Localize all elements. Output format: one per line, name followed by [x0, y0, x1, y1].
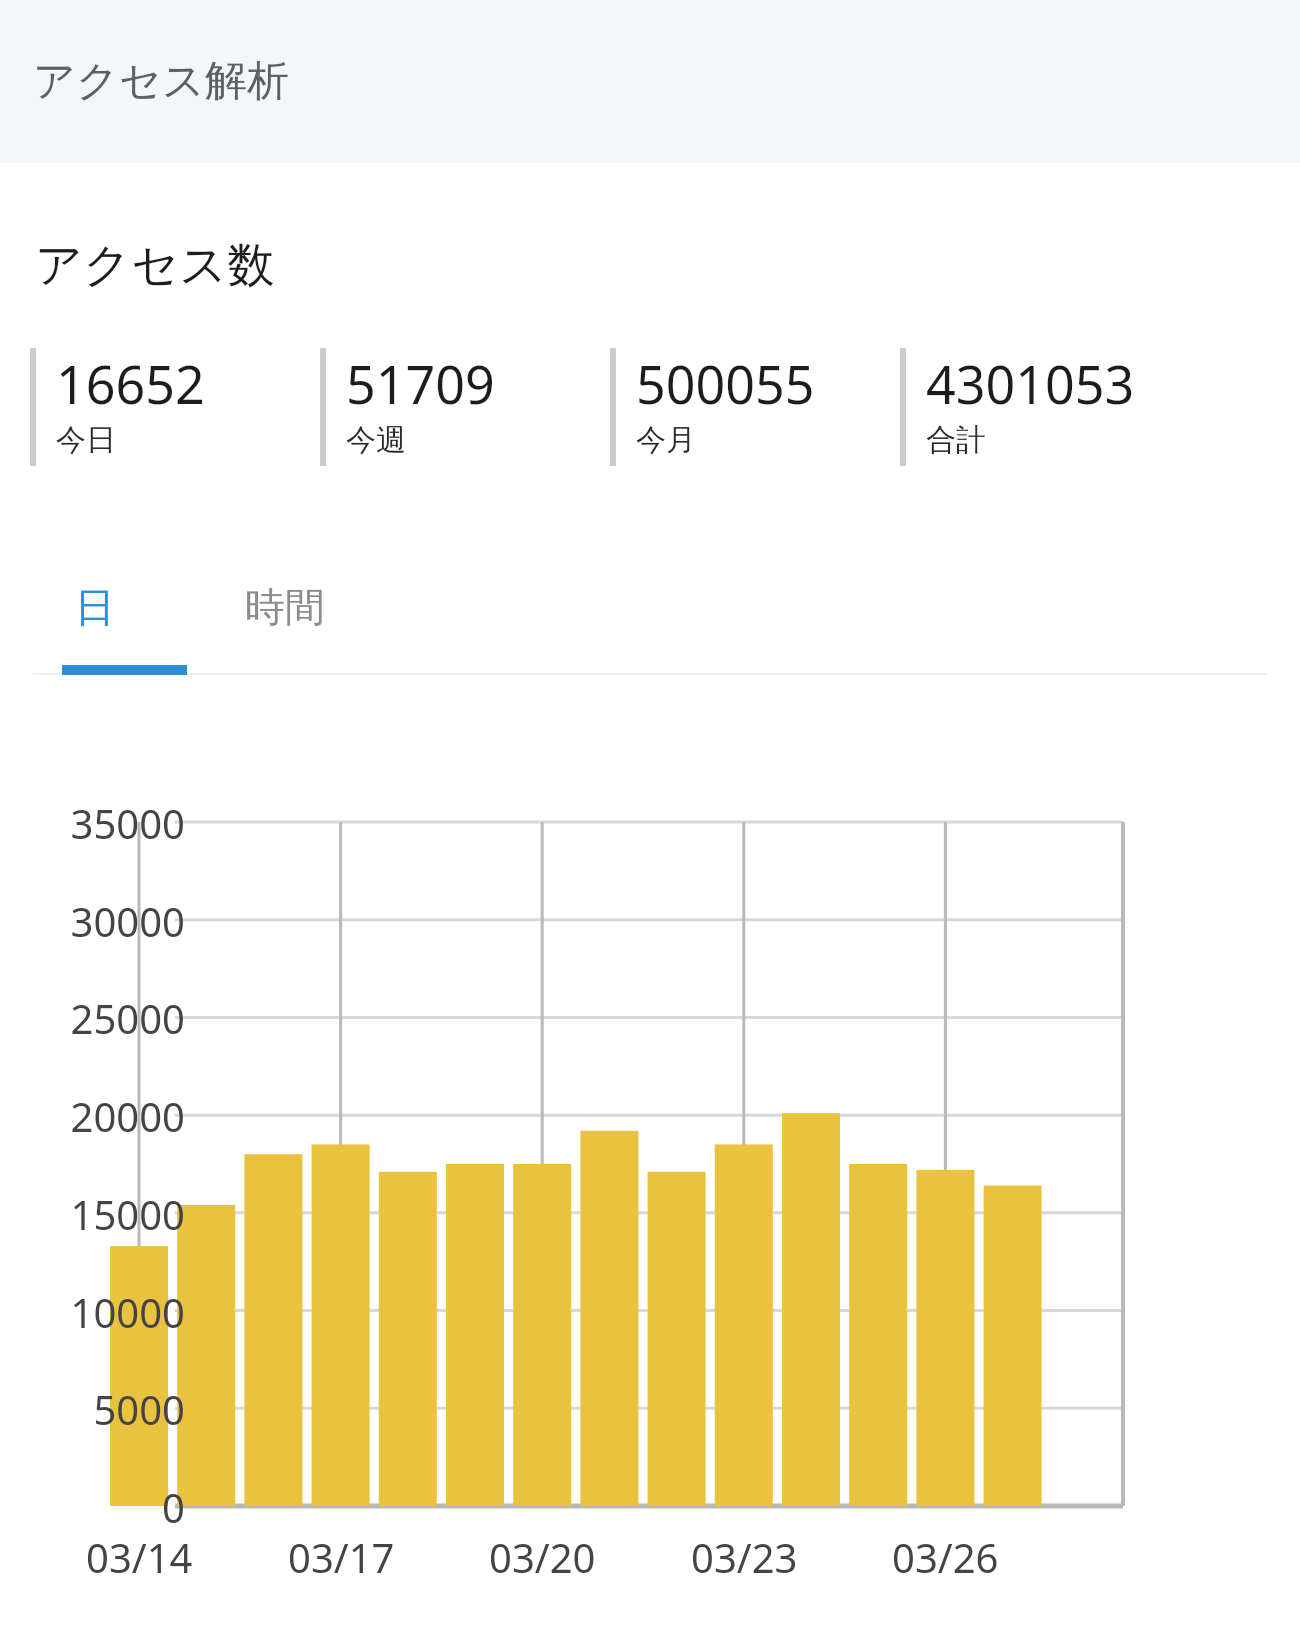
- staticText: アクセス数: [35, 236, 275, 295]
- staticText: 03/14: [86, 1530, 193, 1584]
- staticText: 0: [162, 1480, 185, 1534]
- button[interactable]: 500055: [610, 348, 895, 466]
- staticText: 25000: [70, 991, 185, 1045]
- button[interactable]: 時間: [190, 560, 380, 677]
- staticText: 15000: [70, 1187, 185, 1241]
- staticText: 日: [75, 582, 115, 632]
- staticText: 03/17: [288, 1530, 395, 1584]
- staticText: 03/20: [489, 1530, 596, 1584]
- staticText: 今日: [56, 421, 116, 459]
- staticText: 5000: [93, 1382, 185, 1436]
- staticText: 30000: [70, 894, 185, 948]
- staticText: 20000: [70, 1089, 185, 1143]
- staticText: 4301053: [926, 348, 1135, 419]
- staticText: 今月: [636, 421, 696, 459]
- staticText: アクセス解析: [33, 55, 289, 108]
- staticText: 時間: [245, 582, 325, 632]
- staticText: 500055: [636, 348, 815, 419]
- button[interactable]: 16652: [30, 348, 315, 466]
- staticText: 03/23: [691, 1530, 798, 1584]
- button[interactable]: 4301053: [900, 348, 1185, 466]
- staticText: 03/26: [892, 1530, 999, 1584]
- button[interactable]: 日: [0, 560, 190, 677]
- staticText: 16652: [56, 348, 205, 419]
- staticText: 合計: [926, 421, 986, 459]
- staticText: 51709: [346, 348, 495, 419]
- button[interactable]: 51709: [320, 348, 605, 466]
- staticText: 35000: [70, 796, 185, 850]
- staticText: 10000: [70, 1285, 185, 1339]
- staticText: 今週: [346, 421, 406, 459]
